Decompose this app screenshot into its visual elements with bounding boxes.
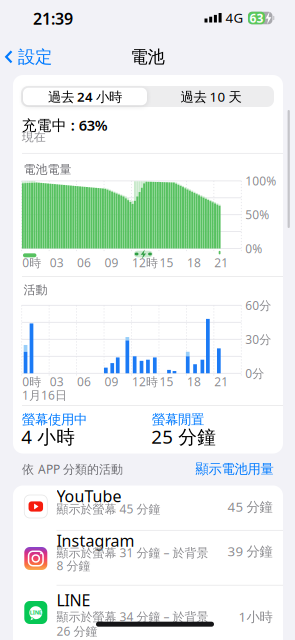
button[interactable]: 顯示電池用量 [183, 461, 273, 477]
staticText: 15 [159, 254, 173, 270]
button[interactable]: 過去 10 天 [148, 86, 274, 107]
staticText: 15 [159, 373, 173, 389]
staticText: Instagram [56, 530, 134, 551]
staticText: 1月16日 [22, 387, 67, 403]
staticText: 8 分鐘 [56, 557, 90, 573]
staticText: 設定 [18, 46, 52, 68]
button[interactable]: YouTube [13, 485, 283, 530]
staticText: 顯示電池用量 [195, 461, 273, 477]
staticText: 06 [77, 373, 91, 389]
staticText: 依 APP 分類的活動 [22, 461, 123, 477]
staticText: 30分 [245, 331, 271, 347]
staticText: 螢幕閒置 [152, 411, 204, 428]
staticText: 顯示於螢幕 45 分鐘 [56, 501, 160, 517]
staticText: YouTube [56, 485, 121, 507]
staticText: 12時 [132, 373, 158, 389]
staticText: 0% [245, 240, 262, 256]
staticText: 06 [77, 254, 91, 270]
staticText: 09 [105, 373, 119, 389]
staticText: 螢幕使用中 [22, 411, 87, 428]
staticText: LINE [56, 589, 90, 611]
staticText: 63 [249, 10, 263, 26]
staticText: 0時 [22, 373, 41, 389]
staticText: 活動 [23, 283, 47, 297]
staticText: LINE [30, 609, 42, 616]
staticText: 0時 [22, 254, 41, 270]
staticText: 顯示於螢幕 34 分鐘 – 於背景 [56, 608, 208, 624]
staticText: 18 [187, 373, 201, 389]
staticText: 21:39 [33, 8, 73, 29]
staticText: 4 小時 [21, 424, 75, 449]
button[interactable]: 過去 24 小時 [22, 86, 148, 107]
staticText: 電池 [130, 46, 164, 68]
staticText: 電池電量 [23, 162, 71, 177]
staticText: 4G [225, 9, 243, 26]
staticText: 45 分鐘 [227, 498, 272, 515]
staticText: 39 分鐘 [227, 542, 272, 560]
staticText: 顯示於螢幕 31 分鐘 – 於背景 [56, 544, 208, 560]
staticText: 50% [245, 207, 269, 223]
staticText: 過去 10 天 [180, 88, 241, 105]
staticText: 03 [50, 373, 64, 389]
staticText: 25 分鐘 [151, 424, 216, 449]
staticText: 09 [105, 254, 119, 270]
staticText: 21 [214, 254, 228, 270]
staticText: 21 [214, 373, 228, 389]
staticText: 03 [50, 254, 64, 270]
button[interactable]: 設定 [5, 46, 52, 68]
button[interactable]: LINE [13, 585, 283, 640]
staticText: 現在 [22, 130, 46, 144]
staticText: 充電中 : 63% [22, 115, 108, 135]
staticText: 18 [187, 254, 201, 270]
staticText: 26 分鐘 [56, 623, 97, 639]
staticText: 過去 24 小時 [48, 88, 122, 105]
staticText: 12時 [132, 254, 158, 270]
button[interactable]: Instagram [13, 530, 283, 585]
staticText: 100% [245, 173, 276, 189]
staticText: 1小時 [238, 608, 272, 625]
staticText: 0分 [245, 365, 264, 381]
staticText: 60分 [245, 297, 271, 313]
